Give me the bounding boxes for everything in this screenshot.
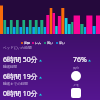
staticText: 76% [73,55,87,65]
staticText: 覚醒 [24,41,30,45]
button[interactable]: Mood [71,71,81,81]
button[interactable]: Note [71,88,81,98]
staticText: ベッドにいた時間 [3,46,32,50]
staticText: レム [35,41,42,45]
staticText: 浅い [47,41,54,45]
staticText: 気分 [73,66,79,70]
staticText: 睡眠時間 [3,65,17,69]
staticText: 睡眠までの時間 [3,82,28,86]
staticText: 6時間 19分 [3,72,38,82]
staticText: 深い [59,41,66,45]
staticText: メモ [73,83,80,87]
staticText: 0時間 10分 [3,89,38,99]
staticText: 6時間 50分 [3,55,38,65]
